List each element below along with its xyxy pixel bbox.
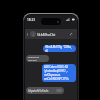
staticText: ASKCdxrnHSSTcK8 'gkvbwkbvjBHfO ,-nsKSqws… (44, 65, 74, 81)
staticText: SdywtoKrSvSedn (28, 89, 49, 93)
staticText: 18:23 (27, 18, 35, 22)
button[interactable]: Call (68, 31, 74, 37)
staticText: SkbMhuCbt (37, 32, 56, 36)
button[interactable]: ASKCdxrnHSSTcK8 'gkvbwkbvjBHfO ,-nsKSqws… (42, 64, 76, 82)
button[interactable]: fNmlUfkS1Sg 'CSBw, sX (43, 45, 76, 52)
staticText: fGbXw-vk 2OYuM (28, 55, 47, 62)
button[interactable]: SdywtoKrSvSedn (26, 87, 64, 94)
staticText: fNmlUfkS1Sg 'CSBw, sX (45, 45, 74, 52)
button[interactable]: fGbXw-vk 2OYuM (26, 55, 49, 62)
button[interactable]: Back (25, 32, 30, 37)
